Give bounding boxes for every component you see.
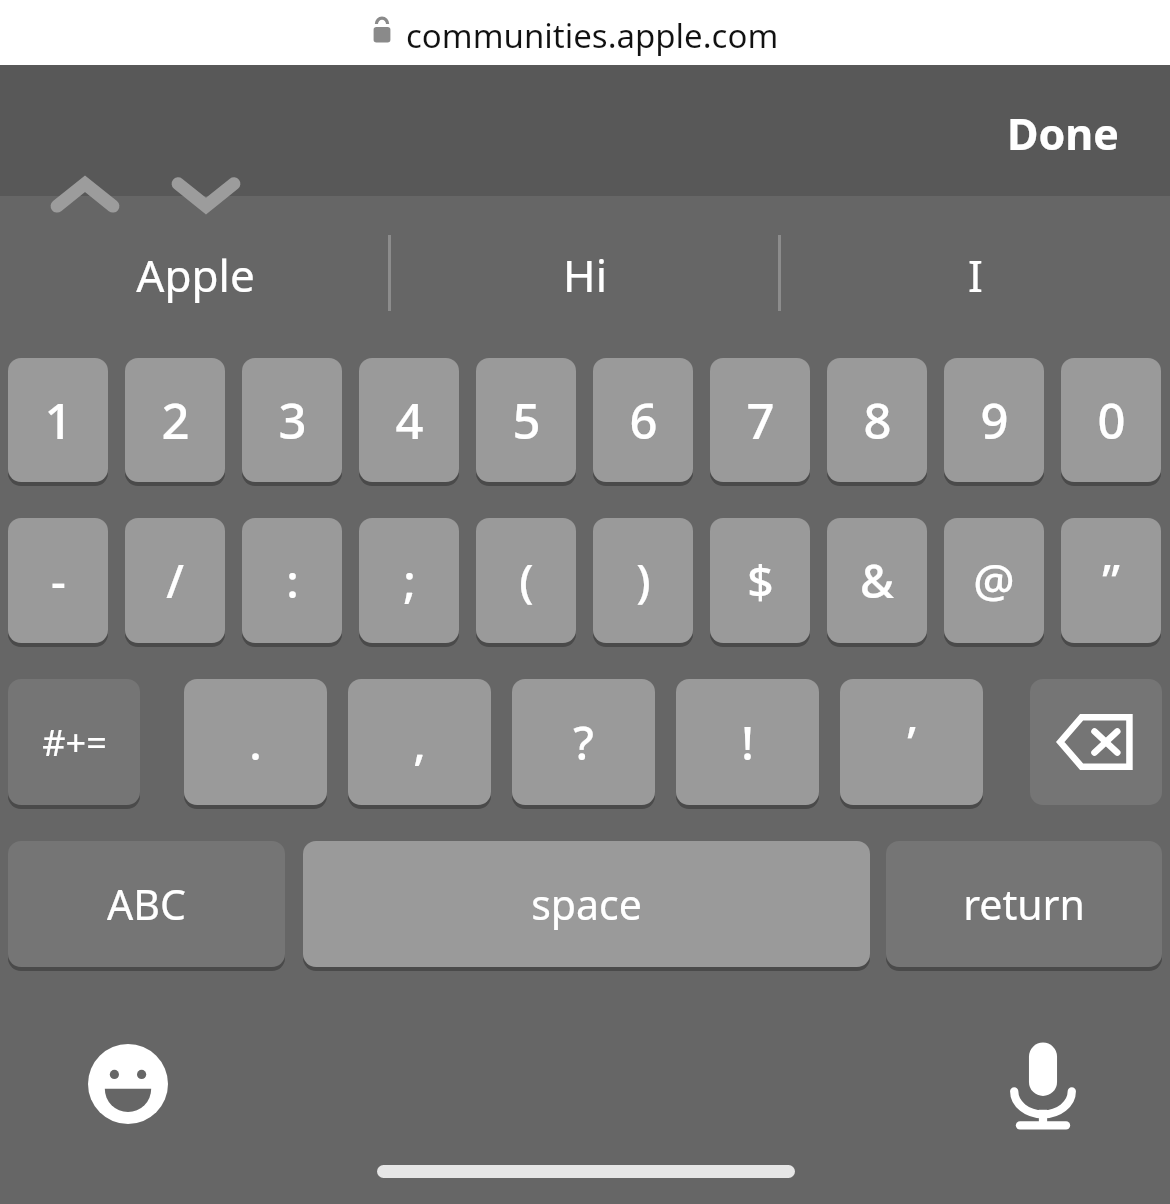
button[interactable]: return <box>886 841 1162 967</box>
button[interactable]: ( <box>476 518 576 643</box>
staticText: ? <box>573 711 594 774</box>
button[interactable]: Emoji keyboard <box>70 1028 185 1140</box>
button[interactable]: ! <box>676 679 819 805</box>
staticText: ’ <box>907 711 916 774</box>
button[interactable]: ) <box>593 518 693 643</box>
staticText: 4 <box>395 387 424 454</box>
button[interactable]: 7 <box>710 358 810 482</box>
staticText: 7 <box>746 387 775 454</box>
staticText: #+= <box>42 718 107 767</box>
button[interactable]: #+= <box>8 679 140 805</box>
button[interactable]: ” <box>1061 518 1161 643</box>
button[interactable]: Dictation <box>985 1028 1100 1140</box>
button[interactable]: - <box>8 518 108 643</box>
staticText: , <box>413 711 426 774</box>
staticText: Hi <box>563 245 607 305</box>
staticText: ABC <box>107 876 186 932</box>
staticText: 5 <box>512 387 541 454</box>
staticText: 6 <box>629 387 658 454</box>
button[interactable]: ? <box>512 679 655 805</box>
button[interactable]: 3 <box>242 358 342 482</box>
button[interactable]: . <box>184 679 327 805</box>
staticText: : <box>286 549 299 612</box>
staticText: ” <box>1102 549 1120 612</box>
button[interactable]: Next field <box>161 160 251 232</box>
staticText: & <box>860 549 894 612</box>
staticText: ! <box>741 711 754 774</box>
button[interactable]: ABC <box>8 841 285 967</box>
staticText: Apple <box>136 245 255 305</box>
staticText: 9 <box>980 387 1009 454</box>
button[interactable]: ; <box>359 518 459 643</box>
button[interactable]: Apple <box>0 196 390 353</box>
button[interactable]: & <box>827 518 927 643</box>
staticText: ) <box>636 549 651 612</box>
staticText: I <box>968 245 983 305</box>
staticText: ; <box>403 549 416 612</box>
staticText: ( <box>519 549 534 612</box>
button[interactable]: ’ <box>840 679 983 805</box>
button[interactable]: , <box>348 679 491 805</box>
staticText: space <box>531 876 642 932</box>
staticText: @ <box>973 549 1015 612</box>
staticText: communities.apple.com <box>406 13 779 58</box>
button[interactable]: I <box>780 196 1170 353</box>
button[interactable]: 0 <box>1061 358 1161 482</box>
staticText: 3 <box>278 387 307 454</box>
button[interactable]: 1 <box>8 358 108 482</box>
button[interactable]: 4 <box>359 358 459 482</box>
button[interactable]: $ <box>710 518 810 643</box>
staticText: 1 <box>44 387 73 454</box>
button[interactable]: 9 <box>944 358 1044 482</box>
staticText: return <box>963 876 1085 932</box>
button[interactable]: 5 <box>476 358 576 482</box>
staticText: - <box>51 549 66 612</box>
staticText: / <box>166 549 184 612</box>
staticText: 0 <box>1097 387 1126 454</box>
button[interactable]: Backspace <box>1030 679 1162 805</box>
staticText: Done <box>1007 104 1119 163</box>
button[interactable]: Hi <box>390 196 780 353</box>
button[interactable]: 2 <box>125 358 225 482</box>
staticText: 8 <box>863 387 892 454</box>
button[interactable]: / <box>125 518 225 643</box>
button[interactable]: space <box>303 841 870 967</box>
button[interactable]: 8 <box>827 358 927 482</box>
button[interactable]: communities.apple.com <box>0 0 1170 65</box>
button[interactable]: @ <box>944 518 1044 643</box>
button[interactable]: 6 <box>593 358 693 482</box>
button[interactable]: Previous field <box>40 160 130 232</box>
staticText: $ <box>747 549 774 612</box>
button[interactable]: : <box>242 518 342 643</box>
staticText: 2 <box>161 387 190 454</box>
staticText: . <box>249 711 262 774</box>
button[interactable]: Done <box>985 103 1140 163</box>
